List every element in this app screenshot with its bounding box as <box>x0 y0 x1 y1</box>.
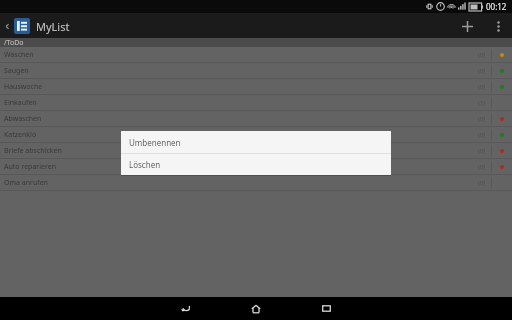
button[interactable]: More options <box>488 16 508 36</box>
staticText: (0) <box>478 179 486 187</box>
button[interactable]: Briefe abschicken <box>0 143 512 159</box>
staticText: (0) <box>478 147 486 155</box>
staticText: Saugen <box>4 66 29 76</box>
button[interactable]: Waschen <box>0 47 512 63</box>
staticText: Löschen <box>129 159 161 170</box>
staticText: Umbenennen <box>129 137 181 148</box>
staticText: (7) <box>478 99 486 107</box>
button[interactable]: Einkaufen <box>0 95 512 111</box>
staticText: (0) <box>478 163 486 171</box>
staticText: (0) <box>478 115 486 123</box>
staticText: (0) <box>478 131 486 139</box>
staticText: MyList <box>36 19 70 34</box>
button[interactable]: Back <box>166 297 206 320</box>
staticText: (0) <box>478 67 486 75</box>
staticText: (0) <box>478 51 486 59</box>
button[interactable]: Oma anrufen <box>0 175 512 191</box>
button[interactable]: Hauswoche <box>0 79 512 95</box>
staticText: /ToDo <box>4 38 24 47</box>
staticText: Einkaufen <box>4 98 37 108</box>
staticText: Katzenklo <box>4 130 37 140</box>
button[interactable]: Löschen <box>121 154 391 175</box>
button[interactable]: Recent apps <box>306 297 346 320</box>
button[interactable]: Saugen <box>0 63 512 79</box>
button[interactable]: Katzenklo <box>0 127 512 143</box>
staticText: 00:12 <box>486 1 507 12</box>
staticText: Hauswoche <box>4 82 43 92</box>
button[interactable]: App icon <box>14 18 30 34</box>
staticText: (0) <box>478 83 486 91</box>
staticText: Auto reparieren <box>4 162 56 172</box>
button[interactable]: Abwaschen <box>0 111 512 127</box>
button[interactable]: Auto reparieren <box>0 159 512 175</box>
staticText: Abwaschen <box>4 114 42 124</box>
staticText: Waschen <box>4 50 34 60</box>
button[interactable]: Add <box>456 15 478 37</box>
staticText: Briefe abschicken <box>4 146 62 156</box>
button[interactable]: Umbenennen <box>121 131 391 153</box>
button[interactable]: Back <box>2 21 12 31</box>
staticText: Oma anrufen <box>4 178 48 188</box>
button[interactable]: Home <box>236 297 276 320</box>
